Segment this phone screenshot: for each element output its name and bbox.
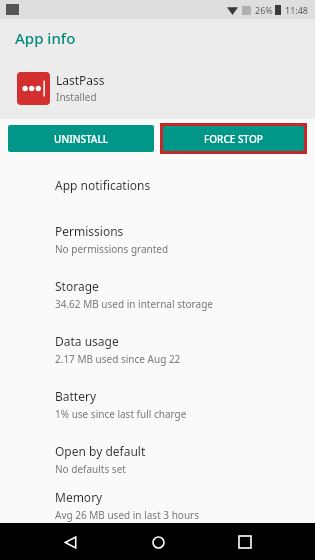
staticText: LastPass bbox=[56, 72, 105, 88]
staticText: Memory bbox=[55, 489, 103, 505]
button[interactable]: Recent apps bbox=[228, 525, 262, 559]
staticText: 26% bbox=[255, 4, 273, 16]
button[interactable]: FORCE STOP bbox=[163, 126, 304, 151]
staticText: No defaults set bbox=[55, 462, 126, 476]
staticText: App info bbox=[15, 28, 76, 48]
staticText: 2.17 MB used since Aug 22 bbox=[55, 352, 181, 366]
staticText: Permissions bbox=[55, 223, 124, 239]
button[interactable]: UNINSTALL bbox=[8, 125, 154, 152]
staticText: UNINSTALL bbox=[54, 132, 109, 146]
staticText: Battery bbox=[55, 388, 97, 404]
staticText: FORCE STOP bbox=[204, 132, 263, 146]
staticText: 1% use since last full charge bbox=[55, 407, 187, 421]
button[interactable]: Memory bbox=[0, 487, 315, 523]
staticText: 11:48 bbox=[285, 4, 309, 16]
button[interactable]: Back bbox=[53, 525, 87, 559]
staticText: Avg 26 MB used in last 3 hours bbox=[55, 508, 199, 522]
button[interactable]: Home bbox=[141, 525, 175, 559]
button[interactable]: Open by default bbox=[0, 432, 315, 487]
button[interactable]: Data usage bbox=[0, 322, 315, 377]
staticText: App notifications bbox=[55, 177, 151, 193]
staticText: Storage bbox=[55, 278, 99, 294]
button[interactable]: App notifications bbox=[0, 157, 315, 212]
button[interactable]: Storage bbox=[0, 267, 315, 322]
staticText: 34.62 MB used in internal storage bbox=[55, 297, 213, 311]
staticText: Installed bbox=[56, 90, 97, 104]
staticText: Data usage bbox=[55, 333, 119, 349]
staticText: Open by default bbox=[55, 443, 146, 459]
staticText: No permissions granted bbox=[55, 242, 169, 256]
button[interactable]: Battery bbox=[0, 377, 315, 432]
button[interactable]: Permissions bbox=[0, 212, 315, 267]
